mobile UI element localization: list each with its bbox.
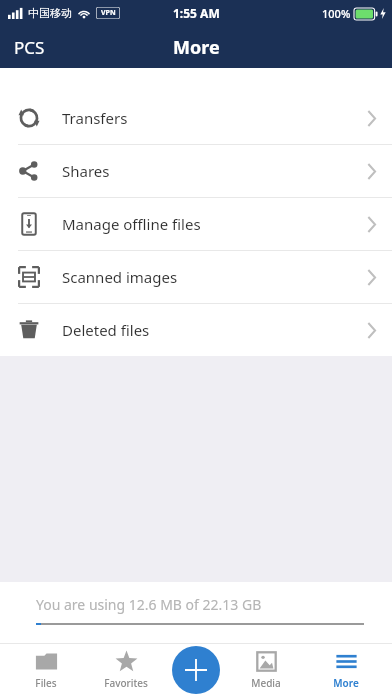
button[interactable]: Favorites	[93, 646, 159, 694]
staticText: Manage offline files	[62, 214, 201, 234]
staticText: More	[333, 676, 359, 690]
staticText: 1:55 AM	[173, 5, 220, 21]
button[interactable]: Transfers	[0, 92, 392, 144]
staticText: PCS	[14, 36, 45, 59]
button[interactable]: Manage offline files	[0, 198, 392, 250]
staticText: You are using 12.6 MB of 22.13 GB	[36, 595, 262, 614]
button[interactable]: Media	[233, 646, 299, 694]
staticText: Favorites	[104, 676, 148, 690]
staticText: Files	[35, 676, 57, 690]
staticText: VPN	[101, 8, 116, 18]
button[interactable]: Scanned images	[0, 251, 392, 303]
button[interactable]: Deleted files	[0, 304, 392, 356]
button[interactable]: Files	[13, 646, 79, 694]
staticText: Shares	[62, 161, 110, 181]
button[interactable]: Shares	[0, 145, 392, 197]
button[interactable]: PCS	[0, 30, 59, 65]
staticText: 100%	[322, 6, 351, 21]
staticText: Deleted files	[62, 320, 150, 340]
button[interactable]: More	[313, 646, 379, 694]
button[interactable]: Add	[172, 646, 220, 694]
staticText: Media	[251, 676, 281, 690]
staticText: More	[173, 35, 220, 60]
staticText: Transfers	[62, 108, 128, 128]
staticText: 中国移动	[28, 6, 72, 20]
staticText: Scanned images	[62, 267, 178, 287]
